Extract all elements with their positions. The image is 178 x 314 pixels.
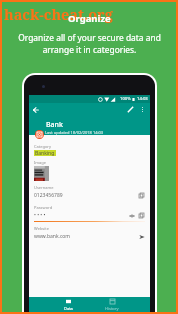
staticText: 100% xyxy=(120,96,131,102)
button[interactable]: Copy xyxy=(138,192,145,199)
button[interactable]: More options xyxy=(138,105,147,114)
staticText: Last updated 18/02/2018 14:03 xyxy=(45,130,104,135)
button[interactable]: History xyxy=(90,297,134,312)
staticText: 14:03 xyxy=(137,96,148,102)
staticText: Username xyxy=(34,185,54,190)
staticText: Category xyxy=(34,144,52,149)
staticText: www.bank.com xyxy=(34,233,71,240)
button[interactable]: Edit xyxy=(126,105,135,114)
staticText: hack-cheat.org xyxy=(4,4,113,24)
staticText: Organize all of your secure data and arr… xyxy=(18,32,161,56)
staticText: • • • • xyxy=(34,212,46,219)
button[interactable]: Open website xyxy=(138,233,145,240)
button[interactable]: Data xyxy=(46,297,90,312)
button[interactable]: Show password xyxy=(128,212,135,219)
button[interactable]: Copy xyxy=(138,212,145,219)
staticText: 0123456789 xyxy=(34,192,63,199)
button[interactable]: Back xyxy=(31,105,40,114)
staticText: Banking xyxy=(35,150,55,156)
staticText: Data xyxy=(64,306,73,311)
staticText: Bank xyxy=(46,120,63,130)
staticText: Image xyxy=(34,160,47,165)
staticText: Website xyxy=(34,226,50,231)
staticText: Password xyxy=(34,205,53,210)
staticText: History xyxy=(105,306,119,311)
staticText: Organize xyxy=(68,12,111,25)
